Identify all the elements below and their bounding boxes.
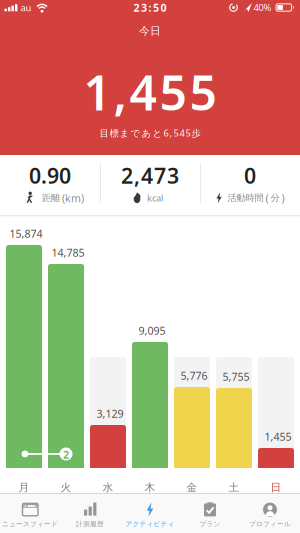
- staticText: 23:50: [133, 0, 166, 15]
- staticText: 0: [244, 161, 256, 190]
- button[interactable]: 計測履歴: [60, 494, 120, 533]
- staticText: 計測履歴: [76, 520, 104, 528]
- button[interactable]: プロフィール: [240, 494, 300, 533]
- button[interactable]: アクティビティ: [120, 494, 180, 533]
- staticText: 2,473: [121, 161, 179, 190]
- button[interactable]: プラン: [180, 494, 240, 533]
- staticText: 月: [18, 481, 29, 494]
- staticText: 9,095: [138, 323, 165, 338]
- button[interactable]: ニュースフィード: [0, 494, 60, 533]
- staticText: 5,755: [222, 369, 249, 384]
- staticText: 土: [228, 481, 239, 494]
- staticText: 15,874: [9, 226, 42, 241]
- staticText: アクティビティ: [125, 520, 174, 528]
- staticText: kcal: [147, 192, 163, 204]
- staticText: 水: [102, 481, 113, 494]
- staticText: 活動時間: [227, 192, 263, 204]
- staticText: ニュースフィード: [2, 520, 58, 528]
- staticText: 1,455: [264, 429, 291, 444]
- staticText: 3,129: [96, 406, 123, 421]
- staticText: プラン: [199, 520, 220, 528]
- staticText: (: [265, 191, 268, 205]
- staticText: 距離: [42, 192, 60, 204]
- staticText: 火: [60, 481, 71, 494]
- staticText: 40%: [253, 1, 271, 14]
- staticText: 5,776: [180, 368, 207, 383]
- staticText: プロフィール: [249, 520, 291, 528]
- staticText: 目標まであと6,545歩: [99, 127, 200, 139]
- staticText: (km): [62, 191, 84, 205]
- staticText: 分: [270, 192, 279, 204]
- staticText: 金: [186, 481, 197, 494]
- staticText: au: [20, 1, 31, 14]
- staticText: 2: [63, 447, 69, 462]
- staticText: 木: [144, 481, 155, 494]
- staticText: ): [281, 191, 284, 205]
- staticText: 0.90: [29, 161, 71, 190]
- staticText: 1,455: [83, 60, 216, 124]
- staticText: 日: [270, 481, 281, 494]
- staticText: 14,785: [51, 245, 84, 260]
- staticText: 今日: [139, 24, 161, 37]
